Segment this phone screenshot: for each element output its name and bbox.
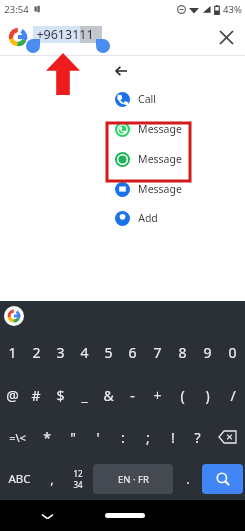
button[interactable]: Message (104, 114, 187, 144)
staticText: 2 (32, 343, 41, 362)
staticText: 3 (56, 343, 65, 362)
staticText: 23:54 (4, 3, 29, 16)
staticText: + (153, 386, 162, 405)
button[interactable]: EN · FR (93, 464, 173, 494)
staticText: 0 (228, 343, 237, 362)
button[interactable]: _ (72, 374, 96, 416)
button[interactable]: Google search (4, 306, 24, 326)
button[interactable]: + (145, 374, 170, 416)
staticText: 6 (128, 343, 137, 362)
staticText: 43% (223, 3, 242, 16)
staticText: & (103, 386, 114, 405)
button[interactable]: 1 (0, 331, 24, 374)
staticText: ' (96, 428, 100, 447)
staticText: 7 (153, 343, 162, 362)
staticText: ? (194, 428, 201, 447)
button[interactable]: 7 (145, 331, 170, 374)
button[interactable]: Search (202, 464, 243, 494)
staticText: : (121, 428, 125, 447)
staticText: . (186, 470, 190, 488)
button[interactable]: * (34, 416, 60, 458)
staticText: # (31, 386, 41, 405)
button[interactable]: Message (104, 144, 187, 174)
staticText: ABC (8, 471, 31, 487)
button[interactable]: ! (160, 416, 185, 458)
staticText: ( (180, 386, 185, 405)
button[interactable]: =\< (0, 416, 34, 458)
button[interactable]: $ (48, 374, 72, 416)
staticText: " (70, 428, 76, 447)
button[interactable]: - (120, 374, 145, 416)
button[interactable]: 4 (72, 331, 96, 374)
staticText: 8 (178, 343, 187, 362)
staticText: Call (138, 92, 156, 106)
staticText: ! (171, 428, 175, 447)
staticText: * (43, 428, 51, 447)
button[interactable]: Back (104, 58, 187, 84)
button[interactable]: ' (85, 416, 110, 458)
button[interactable]: " (60, 416, 85, 458)
button[interactable]: 8 (170, 331, 195, 374)
button[interactable]: Message (104, 174, 187, 204)
staticText: $ (56, 386, 65, 405)
button[interactable]: 6 (120, 331, 145, 374)
button[interactable]: 12 (64, 458, 91, 500)
button[interactable]: : (110, 416, 135, 458)
button[interactable]: ABC (0, 458, 39, 500)
button[interactable]: Call (104, 84, 187, 114)
staticText: @ (6, 386, 19, 405)
staticText: _ (81, 386, 88, 405)
button[interactable]: 3 (48, 331, 72, 374)
staticText: =\< (9, 430, 26, 445)
button[interactable]: / (220, 374, 245, 416)
button[interactable]: ? (185, 416, 210, 458)
button[interactable]: 9 (195, 331, 220, 374)
staticText: Message (138, 152, 182, 166)
button[interactable]: & (96, 374, 120, 416)
button[interactable]: Home (105, 513, 145, 518)
staticText: Add (138, 211, 158, 225)
staticText: ) (205, 386, 210, 405)
button[interactable]: Add (104, 204, 187, 232)
button[interactable]: Close (213, 24, 239, 50)
button[interactable]: Backspace (210, 416, 245, 458)
button[interactable]: ( (170, 374, 195, 416)
staticText: 4 (80, 343, 89, 362)
button[interactable]: Google (8, 27, 28, 47)
button[interactable]: . (175, 458, 200, 500)
button[interactable]: ; (135, 416, 160, 458)
staticText: 34 (73, 479, 83, 490)
button[interactable]: 5 (96, 331, 120, 374)
staticText: EN · FR (118, 473, 149, 486)
staticText: Message (138, 122, 182, 136)
staticText: 1 (8, 343, 17, 362)
staticText: 12 (73, 468, 83, 479)
staticText: / (230, 386, 236, 405)
button[interactable]: Hide keyboard (36, 505, 58, 527)
button[interactable]: , (39, 458, 64, 500)
staticText: ; (146, 428, 150, 447)
button[interactable]: # (24, 374, 48, 416)
button[interactable]: @ (0, 374, 24, 416)
button[interactable]: 0 (220, 331, 245, 374)
button[interactable]: ) (195, 374, 220, 416)
staticText: - (130, 386, 135, 405)
staticText: , (50, 470, 54, 488)
staticText: +9613111 (36, 26, 94, 43)
staticText: Message (138, 182, 182, 196)
button[interactable]: 2 (24, 331, 48, 374)
staticText: 5 (104, 343, 113, 362)
staticText: 9 (203, 343, 212, 362)
